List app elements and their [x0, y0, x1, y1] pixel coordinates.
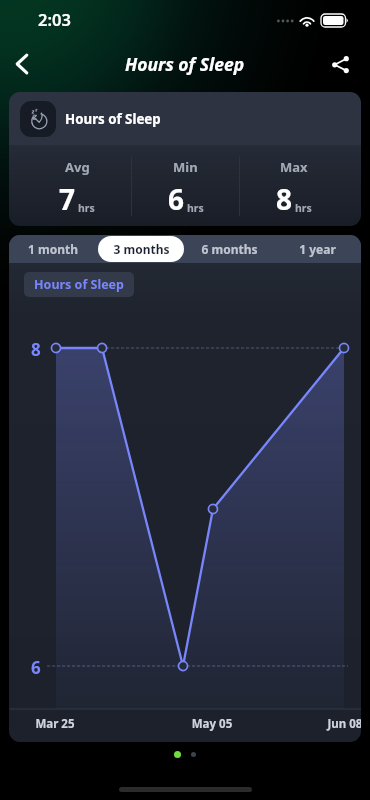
staticText: 8: [276, 180, 293, 218]
staticText: Min: [173, 158, 198, 176]
staticText: hrs: [187, 201, 204, 215]
staticText: 7: [59, 180, 76, 218]
staticText: hrs: [295, 201, 312, 215]
button[interactable]: 6 months: [186, 236, 272, 262]
staticText: 2:03: [38, 8, 71, 30]
staticText: Hours of Sleep: [125, 52, 245, 76]
staticText: 1 month: [28, 241, 78, 257]
staticText: 3 months: [113, 241, 170, 257]
staticText: 6: [168, 180, 185, 218]
staticText: Hours of Sleep: [65, 110, 161, 128]
button[interactable]: 3 months: [98, 236, 184, 262]
staticText: Mar 25: [28, 716, 82, 732]
staticText: 8: [31, 338, 41, 361]
staticText: May 05: [185, 716, 239, 732]
button[interactable]: 1 year: [274, 236, 360, 262]
staticText: Jun 08: [318, 716, 361, 732]
staticText: 6 months: [201, 241, 258, 257]
staticText: Hours of Sleep: [34, 276, 124, 293]
button[interactable]: Hours of Sleep: [24, 272, 134, 297]
staticText: Max: [280, 158, 308, 176]
button[interactable]: 1 month: [10, 236, 96, 262]
button[interactable]: Share: [322, 40, 370, 88]
staticText: 1 year: [299, 241, 336, 257]
staticText: Avg: [65, 158, 90, 176]
staticText: 6: [31, 656, 41, 679]
staticText: hrs: [78, 201, 95, 215]
button[interactable]: Back: [0, 40, 48, 88]
